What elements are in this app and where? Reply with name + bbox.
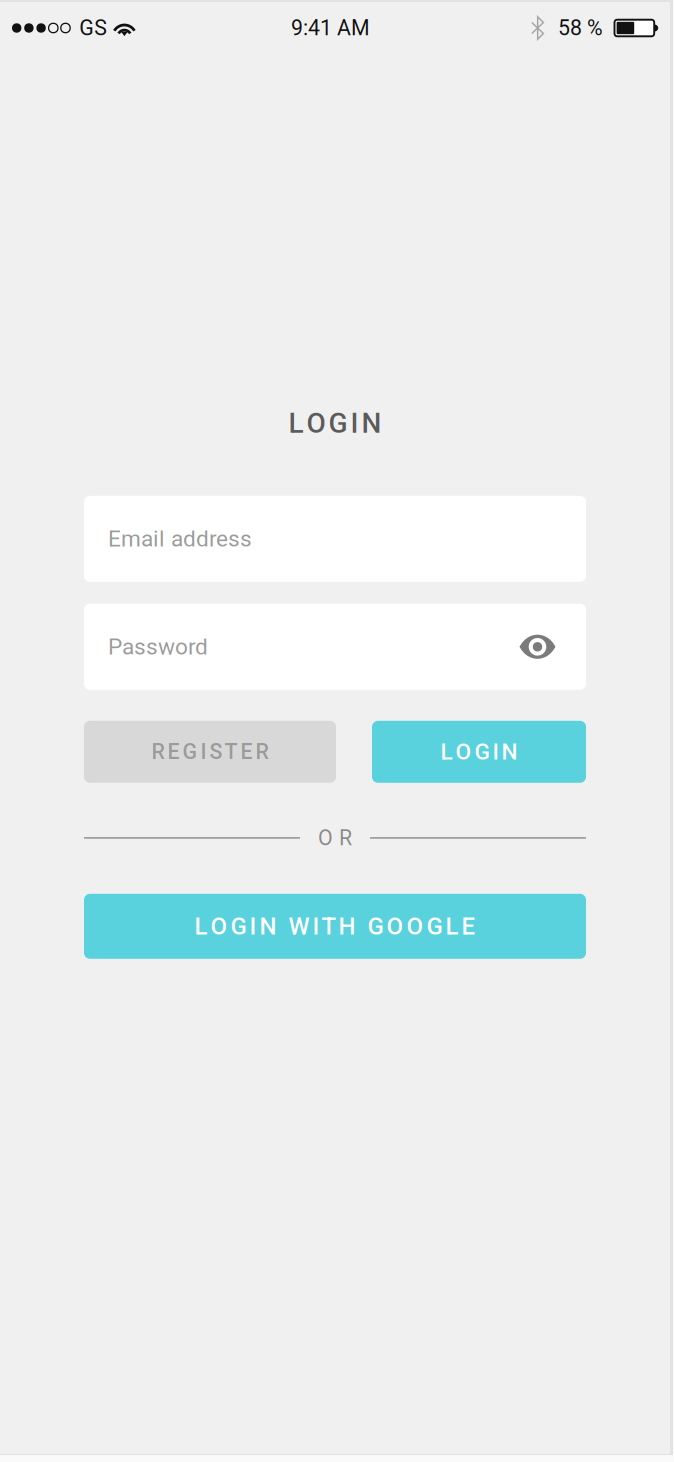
staticText: L O G I N W I T H G O O G L E (194, 912, 475, 940)
staticText: 9:41 AM (291, 15, 370, 40)
button[interactable]: L O G I N (372, 721, 586, 783)
staticText: 58 % (558, 15, 603, 40)
button[interactable]: Password (84, 604, 586, 690)
staticText: L O G I N (288, 407, 381, 440)
button[interactable]: R E G I S T E R (84, 721, 336, 783)
button[interactable]: Email address (84, 496, 586, 582)
staticText: R E G I S T E R (151, 739, 268, 764)
staticText: Email address (108, 525, 252, 552)
staticText: L O G I N (440, 738, 517, 765)
staticText: O R (318, 825, 352, 850)
staticText: GS (79, 15, 107, 40)
staticText: Password (108, 633, 208, 660)
button[interactable]: L O G I N W I T H G O O G L E (84, 894, 586, 959)
